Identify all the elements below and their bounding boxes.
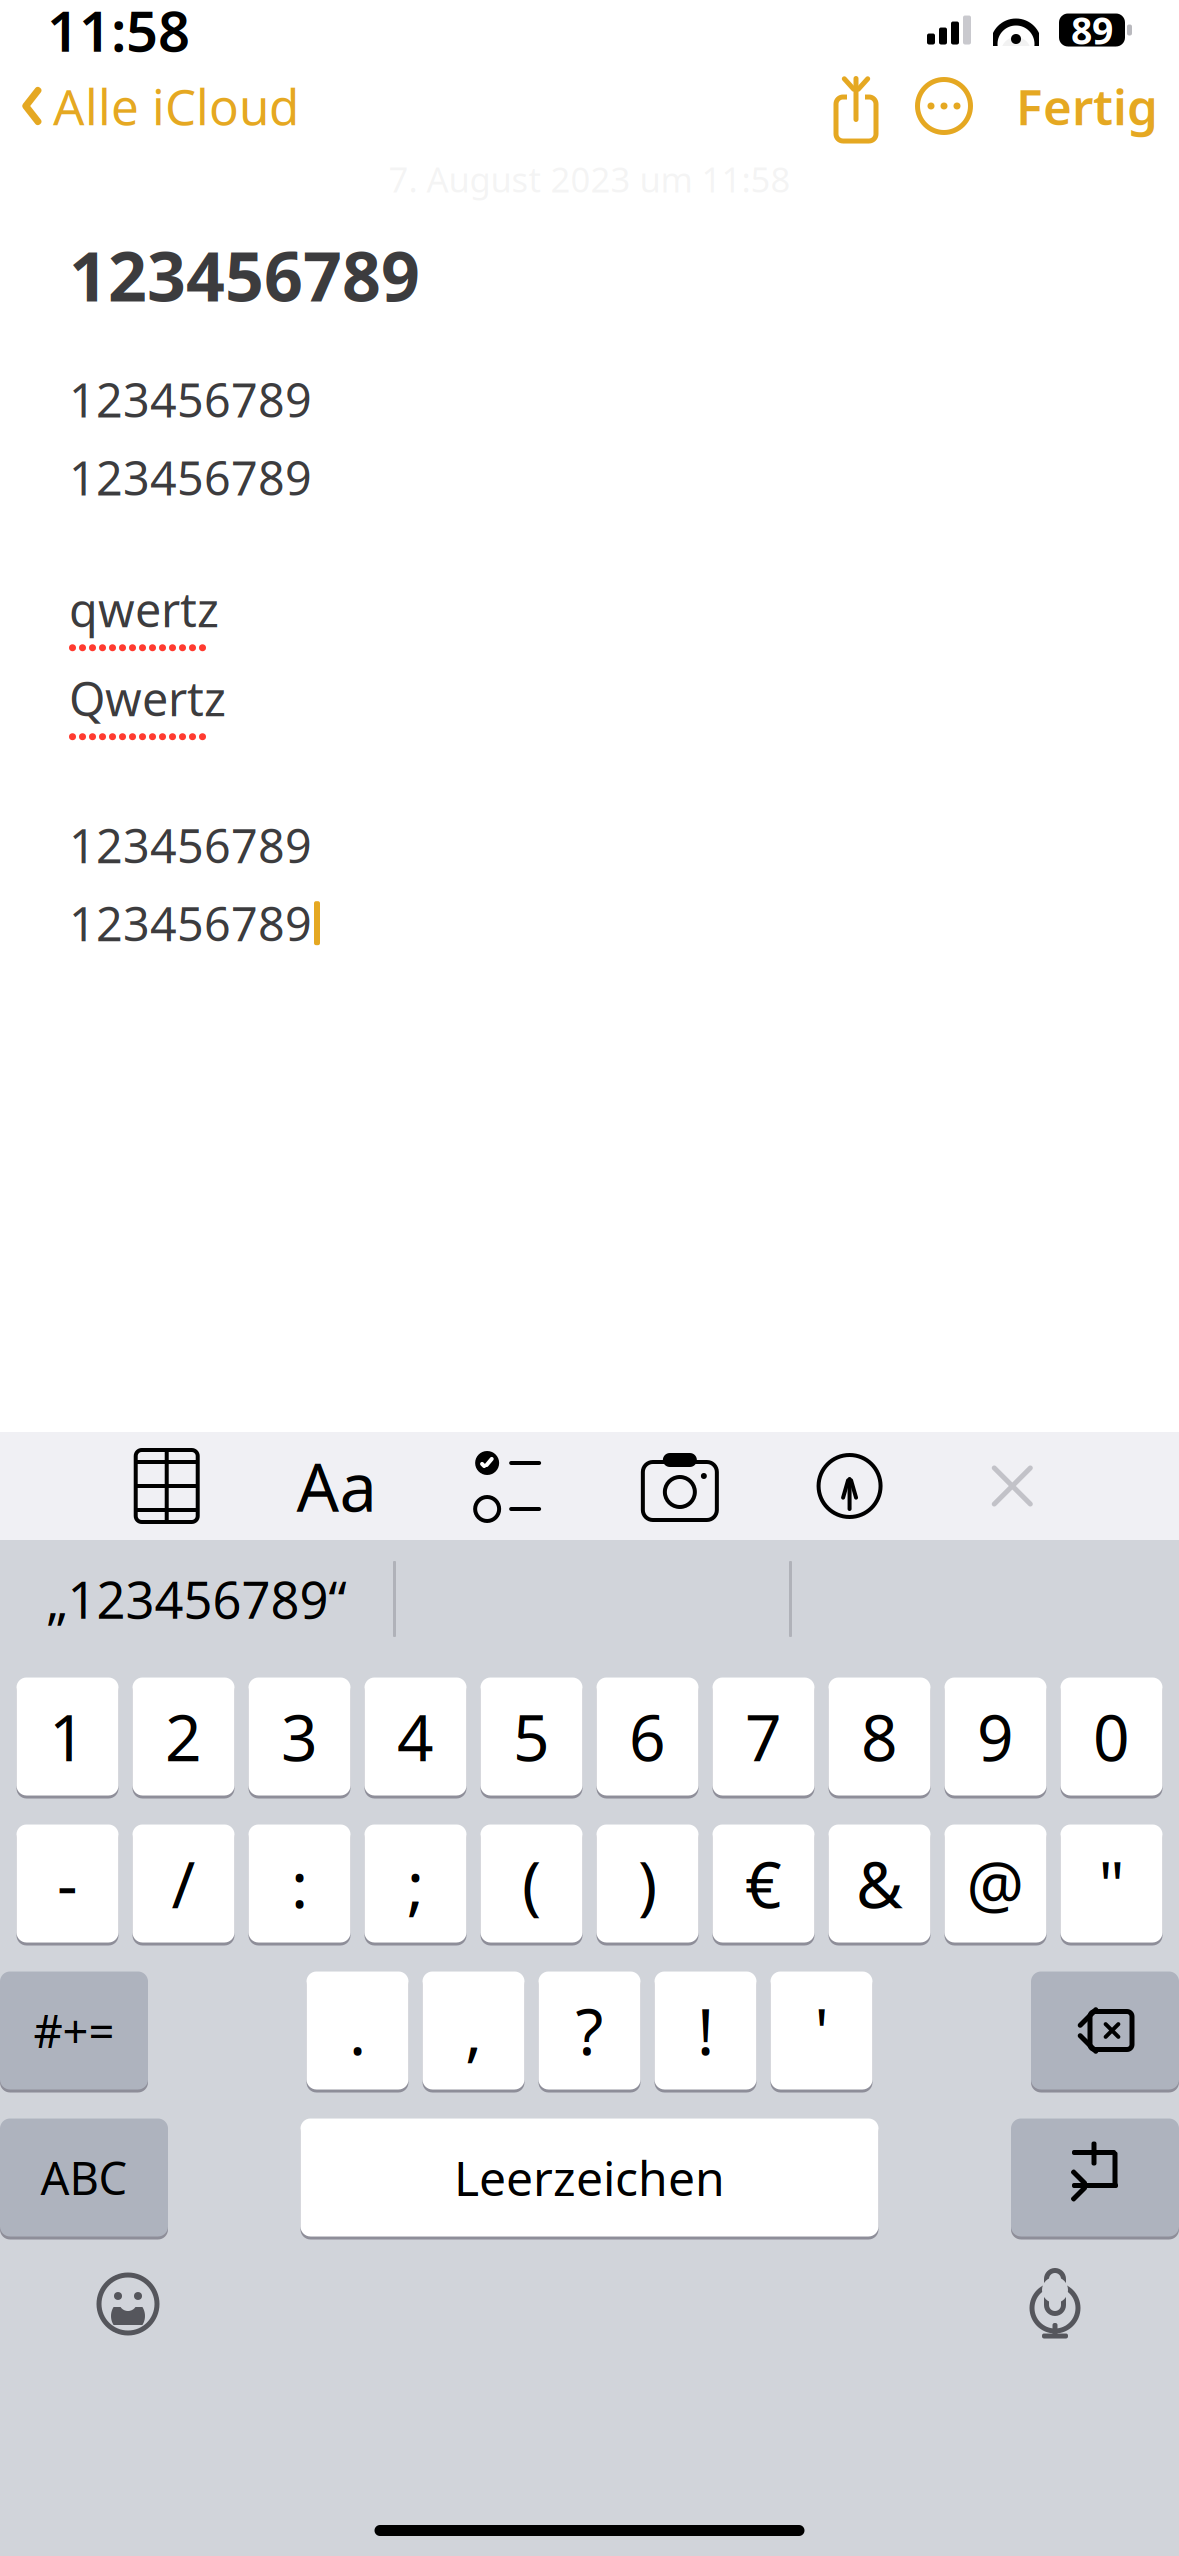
button[interactable]: ( <box>480 1823 582 1944</box>
button[interactable]: 1 <box>16 1676 118 1797</box>
button[interactable]: „123456789“ <box>0 1540 393 1658</box>
staticText: @ <box>966 1841 1024 1926</box>
staticText: Alle iCloud <box>53 73 299 139</box>
button[interactable]: 8 <box>828 1676 930 1797</box>
button[interactable]: Diktieren <box>1027 2268 1083 2340</box>
staticText: 123456789 <box>69 446 312 508</box>
staticText: 123456789 <box>69 892 312 954</box>
staticText: 123456789 <box>69 814 312 876</box>
button[interactable]: ; <box>364 1823 466 1944</box>
button[interactable]: Schließen <box>979 1448 1045 1524</box>
staticText: Aa <box>296 1442 376 1530</box>
staticText: ? <box>575 1988 603 2073</box>
staticText: ) <box>638 1841 657 1926</box>
button[interactable]: 5 <box>480 1676 582 1797</box>
staticText: 123456789 <box>69 368 312 430</box>
button[interactable]: Alle iCloud <box>21 65 299 147</box>
button[interactable]: Tabelle <box>134 1448 200 1524</box>
button[interactable]: ABC <box>0 2117 168 2238</box>
button[interactable]: € <box>712 1823 814 1944</box>
staticText: ( <box>522 1841 541 1926</box>
button[interactable]: #+= <box>0 1970 148 2091</box>
button[interactable]: ) <box>596 1823 698 1944</box>
staticText: 2 <box>165 1694 202 1779</box>
button[interactable]: 9 <box>944 1676 1046 1797</box>
button[interactable]: 2 <box>132 1676 234 1797</box>
staticText: " <box>1098 1841 1124 1926</box>
staticText: . <box>349 1988 366 2073</box>
button[interactable]: - <box>16 1823 118 1944</box>
button[interactable]: Teilen <box>818 74 894 138</box>
button[interactable]: : <box>248 1823 350 1944</box>
staticText: 7. August 2023 um 11:58 <box>388 156 790 202</box>
staticText: : <box>291 1841 308 1926</box>
staticText: 1 <box>49 1694 86 1779</box>
staticText: 4 <box>397 1694 434 1779</box>
button[interactable]: @ <box>944 1823 1046 1944</box>
staticText: - <box>57 1841 78 1926</box>
staticText: 89 <box>1071 5 1113 55</box>
button[interactable]: 0 <box>1060 1676 1162 1797</box>
button[interactable]: Format <box>296 1448 376 1524</box>
button[interactable]: . <box>306 1970 408 2091</box>
staticText: 123456789 <box>69 230 420 320</box>
button[interactable]: ! <box>654 1970 756 2091</box>
staticText: ' <box>814 1988 828 2073</box>
button[interactable]: ? <box>538 1970 640 2091</box>
staticText: / <box>171 1841 195 1926</box>
staticText: 11:58 <box>47 0 190 67</box>
button[interactable]: 7 <box>712 1676 814 1797</box>
staticText: 6 <box>629 1694 666 1779</box>
staticText: 9 <box>977 1694 1014 1779</box>
button[interactable]: , <box>422 1970 524 2091</box>
staticText: 7 <box>745 1694 782 1779</box>
staticText: 8 <box>861 1694 898 1779</box>
button[interactable]: Markierung <box>817 1448 883 1524</box>
button[interactable]: Emoji <box>96 2272 160 2336</box>
staticText: , <box>465 1988 482 2073</box>
button[interactable]: 4 <box>364 1676 466 1797</box>
staticText: € <box>745 1841 782 1926</box>
button[interactable]: Checkliste <box>473 1448 543 1524</box>
staticText: ! <box>697 1988 714 2073</box>
staticText: & <box>856 1841 903 1926</box>
staticText: #+= <box>33 2000 114 2061</box>
staticText: ; <box>407 1841 424 1926</box>
staticText: ABC <box>40 2147 127 2208</box>
button[interactable]: Kamera <box>640 1448 720 1524</box>
staticText: „123456789“ <box>46 1565 346 1633</box>
button[interactable]: 3 <box>248 1676 350 1797</box>
staticText: qwertz <box>69 578 219 640</box>
staticText: Leerzeichen <box>454 2146 725 2209</box>
staticText: Qwertz <box>69 667 226 729</box>
button[interactable]: " <box>1060 1823 1162 1944</box>
button[interactable]: Zeilenschaltung <box>1011 2117 1179 2238</box>
button[interactable]: ' <box>770 1970 872 2091</box>
staticText: Fertig <box>1016 73 1158 139</box>
staticText: 5 <box>513 1694 550 1779</box>
staticText: 0 <box>1093 1694 1130 1779</box>
button[interactable]: Löschen <box>1031 1970 1179 2091</box>
button[interactable]: Fertig <box>994 73 1158 139</box>
button[interactable]: & <box>828 1823 930 1944</box>
button[interactable]: / <box>132 1823 234 1944</box>
button[interactable]: Mehr <box>894 78 994 134</box>
button[interactable]: Leerzeichen <box>300 2117 878 2238</box>
staticText: 3 <box>281 1694 318 1779</box>
button[interactable]: 6 <box>596 1676 698 1797</box>
